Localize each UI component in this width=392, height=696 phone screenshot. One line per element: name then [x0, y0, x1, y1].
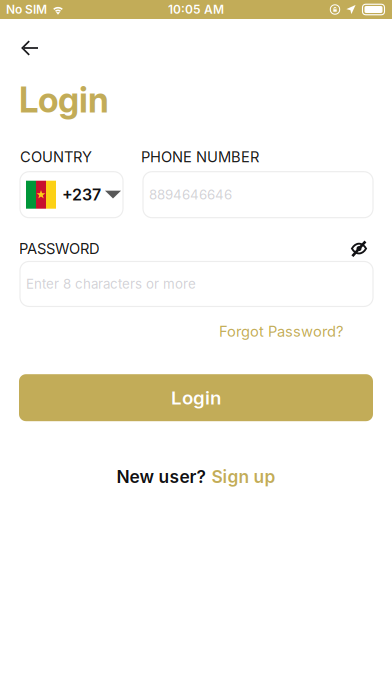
staticText: +237 — [62, 185, 101, 204]
staticText: New user? — [116, 466, 205, 487]
staticText: PASSWORD — [19, 240, 100, 257]
button[interactable]: +237 — [20, 172, 123, 218]
staticText: Sign up — [211, 466, 275, 487]
staticText: Login — [19, 79, 109, 121]
staticText: No SIM — [6, 2, 47, 17]
button[interactable]: Show password — [346, 241, 372, 257]
staticText: Forgot Password? — [219, 322, 343, 340]
staticText: Login — [171, 386, 221, 409]
staticText: Enter 8 characters or more — [26, 276, 196, 292]
button[interactable]: Login — [19, 374, 373, 421]
button[interactable]: Sign up — [211, 466, 275, 487]
button[interactable]: Back — [8, 34, 52, 62]
staticText: PHONE NUMBER — [141, 148, 259, 166]
staticText: COUNTRY — [20, 148, 92, 166]
staticText: 8894646646 — [149, 187, 232, 203]
staticText: 10:05 AM — [168, 2, 224, 17]
button[interactable]: Forgot Password? — [219, 322, 343, 340]
